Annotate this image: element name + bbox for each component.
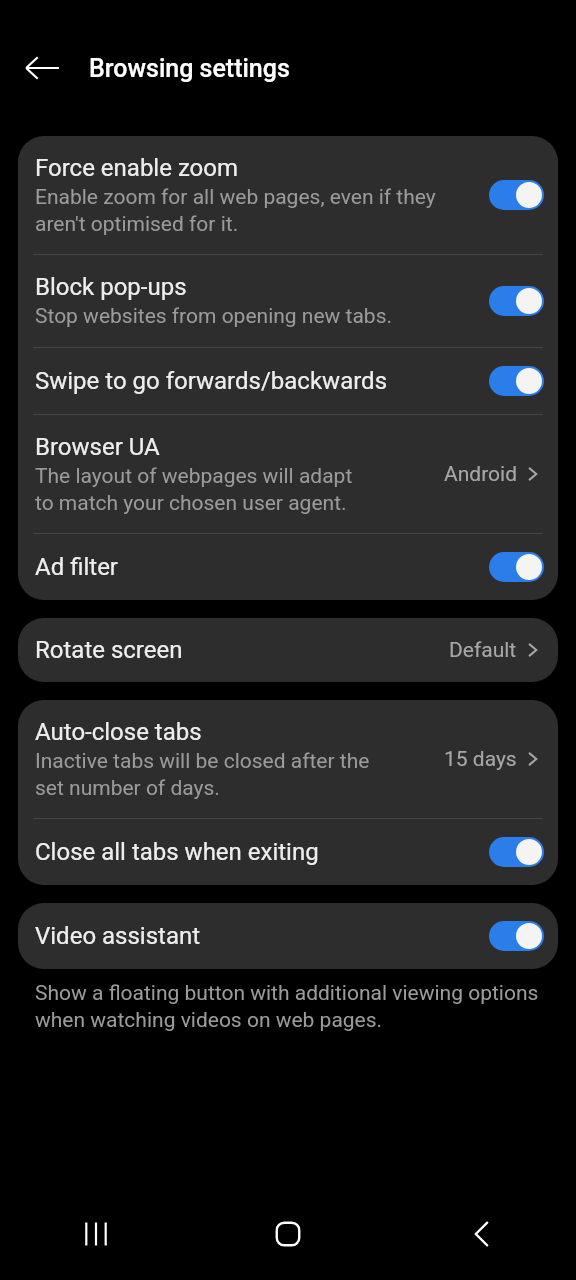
staticText: Block pop-ups [35,273,187,301]
button[interactable]: Browser UA [18,415,558,533]
button[interactable]: Swipe to go forwards/backwards [18,348,558,414]
button[interactable]: Toggle on [489,552,544,582]
button[interactable]: Toggle on [489,286,544,316]
staticText: Swipe to go forwards/backwards [35,367,388,395]
button[interactable]: Recents [0,1205,192,1263]
staticText: Enable zoom for all web pages, even if t… [35,185,445,236]
staticText: Browsing settings [89,54,290,83]
button[interactable]: Back [14,40,70,96]
button[interactable]: Toggle on [489,837,544,867]
button[interactable]: Toggle on [489,180,544,210]
button[interactable]: Back [384,1205,576,1263]
staticText: Android [444,462,517,487]
button[interactable]: Block pop-ups [18,255,558,347]
button[interactable]: Toggle on [489,366,544,396]
button[interactable]: Video assistant [18,903,558,969]
button[interactable]: Ad filter [18,534,558,600]
staticText: Browser UA [35,433,160,461]
button[interactable]: Rotate screen [18,618,558,682]
staticText: Close all tabs when exiting [35,838,319,866]
staticText: Video assistant [35,922,201,950]
staticText: Force enable zoom [35,154,239,182]
staticText: Stop websites from opening new tabs. [35,304,393,329]
button[interactable]: Force enable zoom [18,136,558,254]
staticText: Auto-close tabs [35,718,202,746]
staticText: The layout of webpages will adapt to mat… [35,464,365,515]
staticText: Rotate screen [35,636,183,664]
button[interactable]: Auto-close tabs [18,700,558,818]
staticText: Default [449,638,517,663]
button[interactable]: Toggle on [489,921,544,951]
staticText: 15 days [444,747,517,772]
button[interactable]: Home [192,1205,384,1263]
staticText: Show a floating button with additional v… [35,981,541,1032]
button[interactable]: Close all tabs when exiting [18,819,558,885]
staticText: Inactive tabs will be closed after the s… [35,749,380,800]
staticText: Ad filter [35,553,118,581]
